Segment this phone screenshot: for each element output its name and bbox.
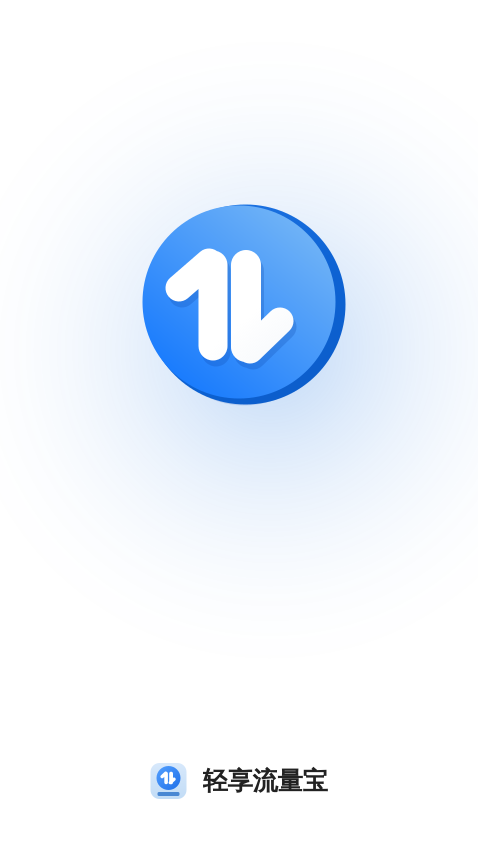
staticText: 轻享流量宝	[202, 765, 327, 796]
